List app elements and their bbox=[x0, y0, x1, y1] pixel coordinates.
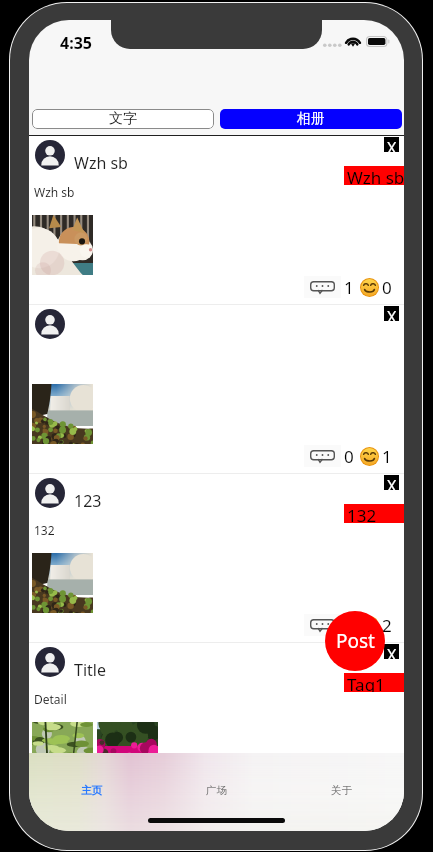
button[interactable]: Wzh sb bbox=[29, 136, 404, 305]
staticText: 132 bbox=[347, 504, 377, 523]
staticText: 132 bbox=[34, 522, 55, 538]
staticText: Title bbox=[74, 659, 106, 681]
button[interactable]: Close post bbox=[384, 137, 399, 152]
staticText: X bbox=[387, 644, 397, 659]
staticText: Wzh sb bbox=[34, 184, 75, 200]
button[interactable]: 关于 bbox=[279, 770, 404, 810]
button[interactable]: 文字 bbox=[32, 109, 214, 129]
button[interactable] bbox=[32, 553, 93, 613]
button[interactable]: Close post bbox=[384, 306, 399, 321]
button[interactable]: Close post bbox=[384, 644, 399, 659]
button[interactable]: Like bbox=[360, 278, 379, 297]
button[interactable] bbox=[32, 215, 93, 275]
staticText: 1 bbox=[344, 276, 354, 298]
button[interactable]: Comments bbox=[310, 445, 335, 467]
button[interactable]: Like bbox=[360, 616, 379, 635]
button[interactable]: Post bbox=[325, 611, 385, 671]
staticText: Detail bbox=[34, 691, 67, 707]
button[interactable] bbox=[32, 722, 93, 782]
button[interactable]: Comments bbox=[310, 276, 335, 298]
button[interactable]: Close post bbox=[384, 475, 399, 490]
staticText: 0 bbox=[382, 276, 392, 298]
staticText: X bbox=[387, 475, 397, 490]
button[interactable]: 123 bbox=[29, 474, 404, 643]
button[interactable]: 132 bbox=[344, 504, 404, 523]
staticText: 文字 bbox=[109, 110, 137, 128]
staticText: 2 bbox=[382, 614, 392, 636]
staticText: 关于 bbox=[331, 784, 352, 797]
staticText: X bbox=[387, 137, 397, 152]
button[interactable]: Close post bbox=[29, 305, 404, 474]
button[interactable]: Like bbox=[360, 447, 379, 466]
staticText: 123 bbox=[74, 490, 102, 512]
button[interactable]: 相册 bbox=[220, 109, 402, 129]
staticText: 1 bbox=[382, 445, 392, 467]
button[interactable] bbox=[97, 722, 158, 782]
button[interactable]: Comments bbox=[310, 783, 335, 805]
button[interactable]: 主页 bbox=[29, 770, 154, 810]
staticText: 0 bbox=[344, 614, 354, 636]
staticText: X bbox=[387, 306, 397, 321]
button[interactable]: 广场 bbox=[154, 770, 279, 810]
staticText: 广场 bbox=[206, 784, 227, 797]
staticText: 0 bbox=[344, 445, 354, 467]
staticText: 主页 bbox=[81, 784, 102, 797]
button[interactable]: Comments bbox=[310, 614, 335, 636]
button[interactable]: Wzh sb bbox=[344, 166, 404, 185]
staticText: 4:35 bbox=[60, 32, 92, 54]
staticText: Wzh sb bbox=[74, 152, 128, 174]
button[interactable] bbox=[32, 384, 93, 444]
staticText: 0 bbox=[344, 783, 354, 805]
staticText: Tag1 bbox=[347, 673, 385, 692]
button[interactable]: Title bbox=[29, 643, 404, 812]
staticText: Wzh sb bbox=[347, 166, 404, 185]
button[interactable]: Tag1 bbox=[344, 673, 404, 692]
staticText: Post bbox=[336, 628, 375, 654]
staticText: 相册 bbox=[297, 110, 325, 128]
